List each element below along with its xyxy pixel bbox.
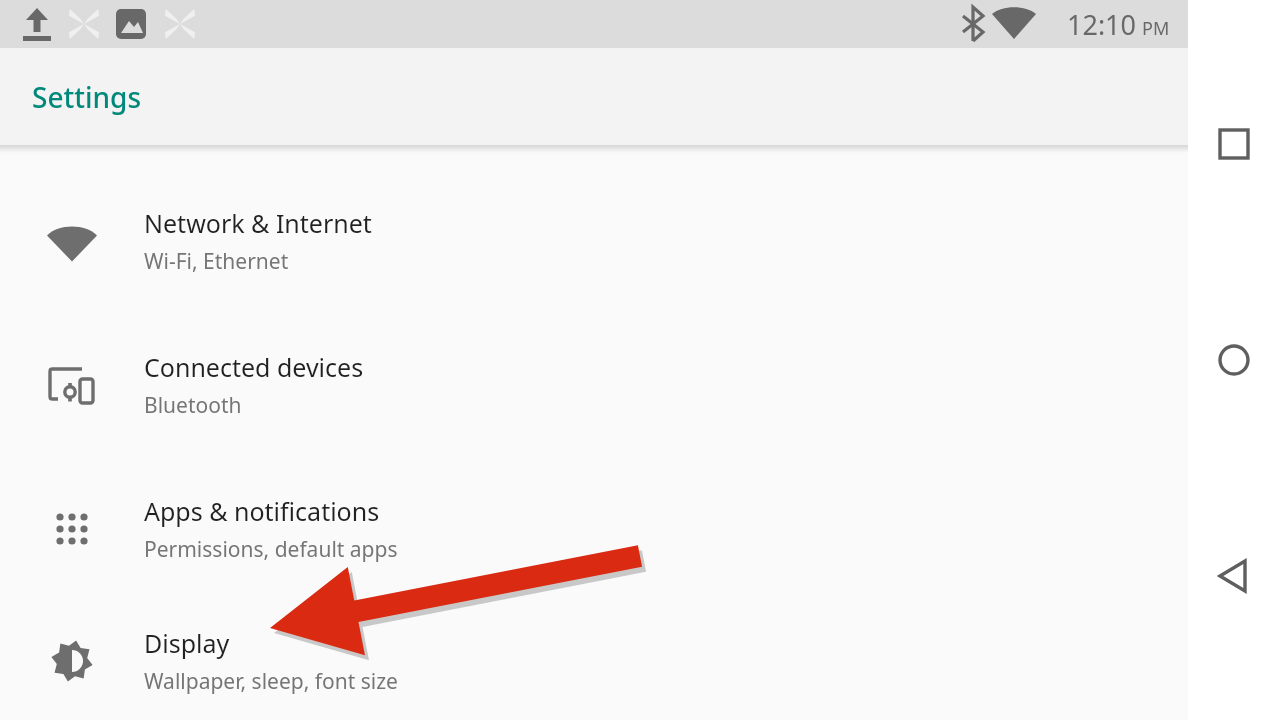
button[interactable]: Display bbox=[0, 601, 1188, 720]
staticText: Wallpaper, sleep, font size bbox=[144, 667, 398, 696]
staticText: Permissions, default apps bbox=[144, 535, 398, 564]
staticText: Bluetooth bbox=[144, 391, 242, 420]
staticText: Network & Internet bbox=[144, 206, 372, 240]
staticText: Connected devices bbox=[144, 350, 364, 384]
button[interactable]: Connected devices bbox=[0, 313, 1188, 457]
button[interactable]: Apps & notifications bbox=[0, 457, 1188, 601]
staticText: PM bbox=[1142, 16, 1170, 41]
staticText: Wi-Fi, Ethernet bbox=[144, 247, 289, 276]
staticText: Display bbox=[144, 626, 230, 660]
staticText: Apps & notifications bbox=[144, 494, 380, 528]
button[interactable]: Network & Internet bbox=[0, 169, 1188, 313]
staticText: 12:10 bbox=[1067, 6, 1137, 43]
staticText: Settings bbox=[32, 78, 142, 116]
button[interactable]: Home bbox=[1188, 334, 1280, 386]
button[interactable]: Back bbox=[1188, 550, 1280, 602]
button[interactable]: Recents bbox=[1188, 118, 1280, 170]
